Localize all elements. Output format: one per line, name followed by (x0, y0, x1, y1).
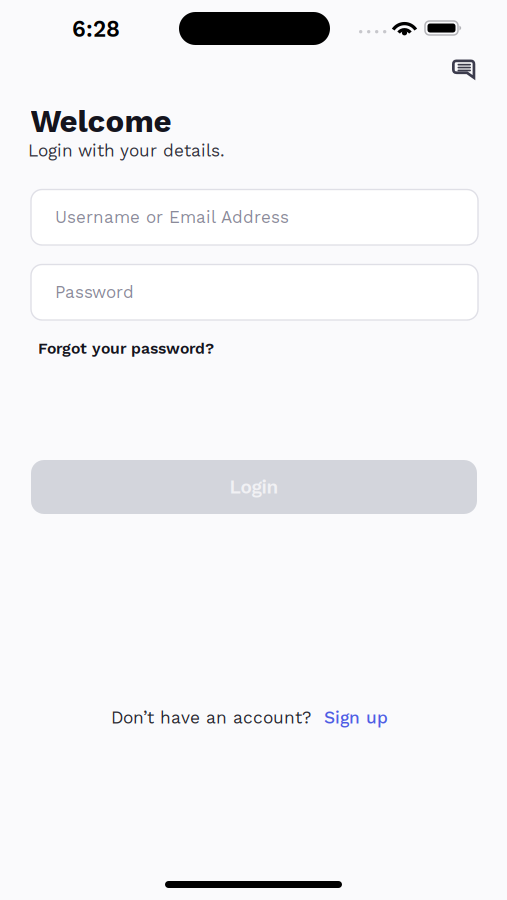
staticText: 6:28 (72, 16, 120, 42)
button[interactable]: Forgot your password? (38, 339, 214, 357)
staticText: Forgot your password? (38, 339, 214, 357)
button[interactable]: Username or Email Address (31, 189, 478, 245)
button[interactable]: Password (31, 264, 478, 320)
staticText: Sign up (324, 707, 388, 728)
staticText: Username or Email Address (55, 207, 289, 227)
button[interactable]: Login (31, 460, 477, 514)
staticText: Don’t have an account? (111, 707, 311, 728)
staticText: Password (55, 282, 134, 302)
staticText: Login (229, 476, 278, 498)
button[interactable]: Sign up (324, 707, 388, 728)
button[interactable]: Support chat (452, 59, 476, 79)
staticText: Welcome (30, 103, 171, 140)
staticText: Login with your details. (28, 140, 225, 161)
